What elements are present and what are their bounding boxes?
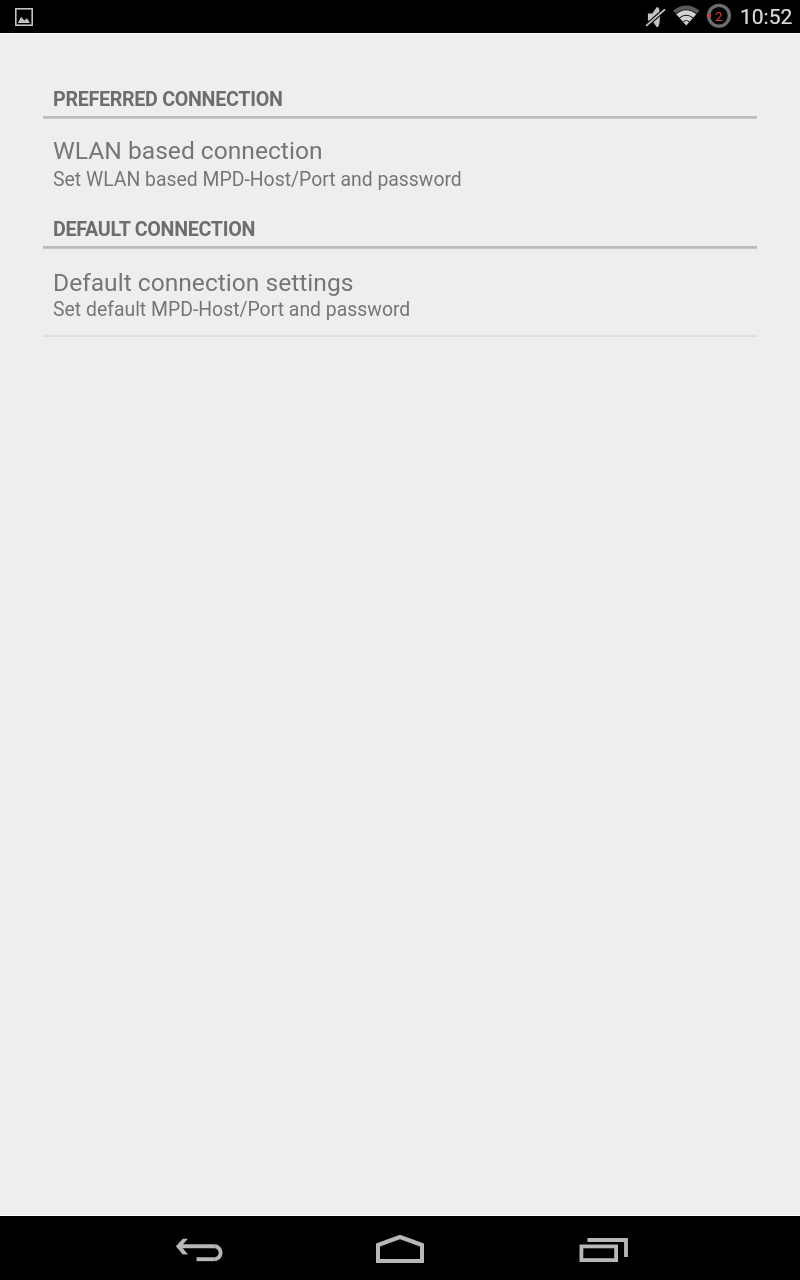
button[interactable]: Home <box>340 1216 460 1280</box>
staticText: Set default MPD-Host/Port and password <box>53 298 411 321</box>
button[interactable]: Recent apps <box>543 1216 663 1280</box>
staticText: PREFERRED CONNECTION <box>53 88 283 111</box>
staticText: Default connection settings <box>53 268 354 297</box>
button[interactable]: Back <box>140 1216 260 1280</box>
staticText: DEFAULT CONNECTION <box>53 218 256 241</box>
button[interactable] <box>0 124 800 198</box>
button[interactable] <box>0 256 800 329</box>
staticText: 10:52 <box>740 5 793 30</box>
staticText: WLAN based connection <box>53 136 323 165</box>
staticText: Set WLAN based MPD-Host/Port and passwor… <box>53 168 462 191</box>
staticText: 2 <box>715 8 723 24</box>
